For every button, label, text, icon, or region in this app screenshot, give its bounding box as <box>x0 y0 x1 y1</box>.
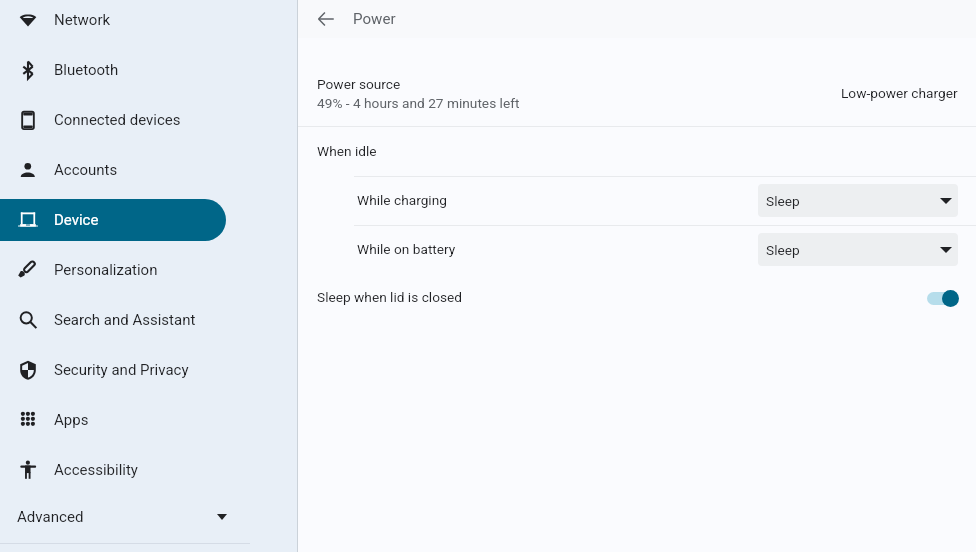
button[interactable]: Sleep when lid is closed <box>298 274 976 322</box>
staticText: 49% - 4 hours and 27 minutes left <box>317 95 520 111</box>
button[interactable]: Sleep <box>758 184 958 217</box>
staticText: Security and Privacy <box>54 361 189 379</box>
button[interactable]: Personalization <box>0 249 247 291</box>
button[interactable]: Bluetooth <box>0 49 247 91</box>
button[interactable]: Advanced <box>0 496 277 538</box>
staticText: Network <box>54 11 111 29</box>
staticText: While on battery <box>357 241 456 257</box>
staticText: Power <box>353 10 396 28</box>
staticText: Sleep <box>766 193 800 209</box>
staticText: Power source <box>317 76 401 92</box>
button[interactable]: Search and Assistant <box>0 299 247 341</box>
staticText: Advanced <box>17 508 84 526</box>
staticText: When idle <box>317 143 377 159</box>
staticText: Personalization <box>54 261 158 279</box>
button[interactable]: While on battery <box>298 226 976 274</box>
button[interactable]: Security and Privacy <box>0 349 247 391</box>
staticText: While charging <box>357 192 447 208</box>
button[interactable]: Device <box>0 199 247 241</box>
staticText: Accounts <box>54 161 118 179</box>
button[interactable]: Connected devices <box>0 99 247 141</box>
staticText: Device <box>54 211 99 229</box>
button[interactable]: While charging <box>298 177 976 225</box>
button[interactable]: Accessibility <box>0 449 247 491</box>
button[interactable]: Network <box>0 0 247 41</box>
button[interactable]: Sleep <box>758 233 958 266</box>
staticText: Low-power charger <box>841 85 958 101</box>
staticText: Connected devices <box>54 111 181 129</box>
staticText: Sleep when lid is closed <box>317 289 462 305</box>
button[interactable]: Accounts <box>0 149 247 191</box>
staticText: Accessibility <box>54 461 138 479</box>
button[interactable]: Apps <box>0 399 247 441</box>
staticText: Bluetooth <box>54 61 119 79</box>
staticText: Apps <box>54 411 89 429</box>
staticText: Search and Assistant <box>54 311 196 329</box>
staticText: Sleep <box>766 242 800 258</box>
button[interactable]: Back <box>314 7 338 31</box>
